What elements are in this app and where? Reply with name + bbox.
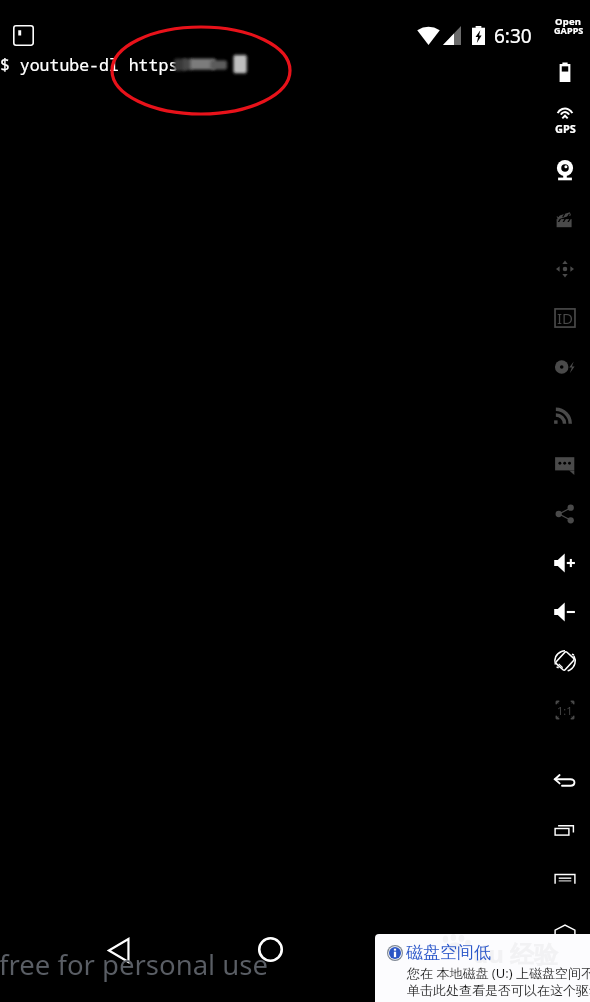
button[interactable]: Keyboard <box>543 857 587 901</box>
button[interactable]: Scale 1:1 <box>543 688 587 732</box>
button[interactable]: Back <box>543 759 587 803</box>
button[interactable]: GPS <box>543 100 587 144</box>
button[interactable]: Home <box>248 927 293 972</box>
button[interactable]: Disc <box>543 345 587 389</box>
button[interactable]: ID <box>543 296 587 340</box>
button[interactable]: Battery <box>543 51 587 95</box>
staticText: 磁盘空间低 <box>406 942 491 963</box>
staticText: free for personal use <box>0 946 268 983</box>
staticText: 1:1 <box>557 703 573 718</box>
staticText: ID <box>557 308 574 328</box>
button[interactable]: Volume down <box>543 590 587 634</box>
button[interactable]: Recent apps <box>543 808 587 852</box>
button[interactable]: Home <box>543 906 587 950</box>
button[interactable]: Share <box>543 492 587 536</box>
staticText: 6:30 <box>494 23 532 49</box>
staticText: GAPPS <box>554 24 584 36</box>
button[interactable]: Volume up <box>543 541 587 585</box>
staticText: $ youtube-dl https <box>0 53 179 75</box>
button[interactable]: Rotate screen <box>543 639 587 683</box>
button[interactable]: Signal <box>543 394 587 438</box>
staticText: 您在 本地磁盘 (U:) 上磁盘空间不够 <box>407 964 590 982</box>
staticText: 单击此处查看是否可以在这个驱动器 <box>407 982 590 998</box>
staticText: GPS <box>555 121 576 136</box>
staticText: Open <box>555 15 582 28</box>
button[interactable]: Camera <box>543 149 587 193</box>
button[interactable]: Back <box>96 928 141 973</box>
button[interactable]: Video <box>543 198 587 242</box>
button[interactable]: Messages <box>543 443 587 487</box>
button[interactable]: D-pad <box>543 247 587 291</box>
staticText: du 经验 <box>473 937 559 970</box>
